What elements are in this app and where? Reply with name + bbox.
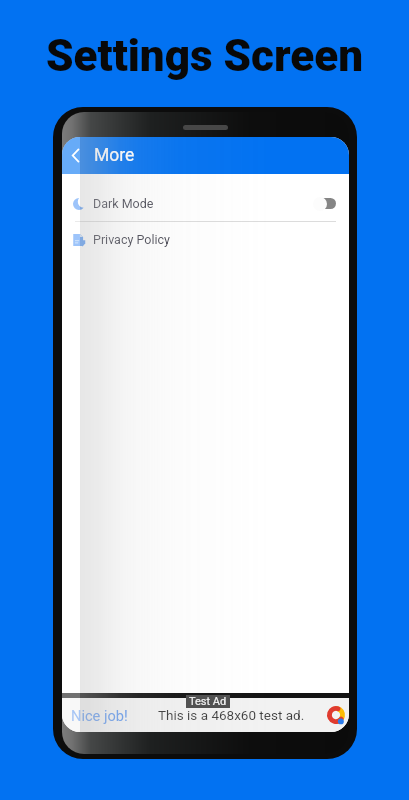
button[interactable]: Nice job!: [62, 707, 119, 724]
button[interactable]: Dark Mode switch: [313, 196, 337, 211]
button[interactable]: Dark Mode: [62, 186, 349, 221]
staticText: Dark Mode: [93, 196, 154, 211]
button[interactable]: Privacy Policy: [62, 222, 349, 257]
staticText: Test Ad: [189, 695, 227, 708]
other: Ad choices: [327, 706, 345, 724]
staticText: This is a 468x60 test ad.: [158, 707, 305, 723]
staticText: More: [94, 145, 135, 166]
button[interactable]: Navigate up: [62, 137, 88, 174]
staticText: Privacy Policy: [93, 232, 170, 247]
staticText: Settings Screen: [46, 30, 364, 82]
